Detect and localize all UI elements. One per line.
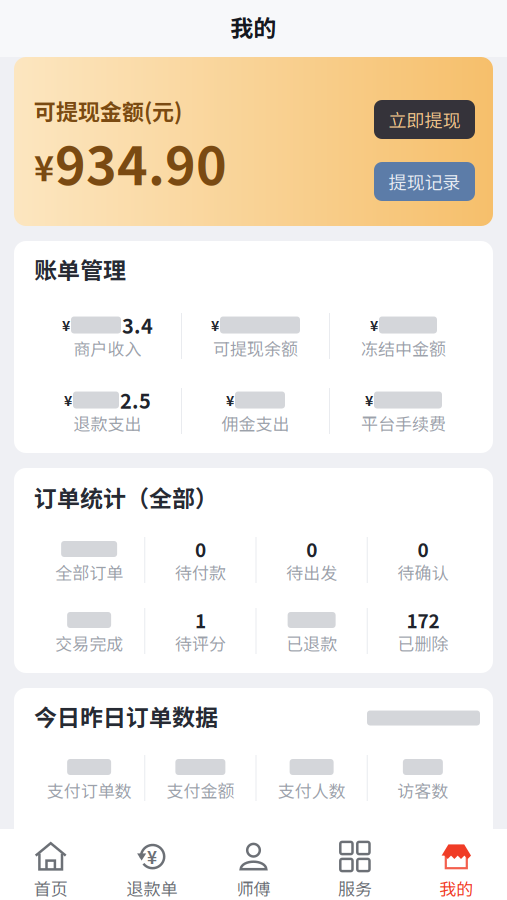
- staticText: 今日昨日订单数据: [34, 699, 218, 733]
- staticText: 172: [406, 606, 439, 634]
- staticText: ¥: [34, 142, 54, 191]
- staticText: 已退款: [286, 631, 337, 655]
- staticText: 佣金支出: [221, 411, 289, 435]
- staticText: 待付款: [175, 560, 226, 584]
- staticText: 支付订单数: [47, 778, 132, 802]
- staticText: 可提现余额: [213, 336, 298, 360]
- staticText: 支付金额: [166, 778, 234, 802]
- staticText: 待出发: [286, 560, 337, 584]
- staticText: 已删除: [397, 631, 448, 655]
- staticText: 0: [417, 535, 428, 563]
- staticText: 交易完成: [55, 631, 123, 655]
- staticText: ¥: [226, 390, 234, 410]
- staticText: ¥: [62, 315, 70, 335]
- staticText: 访客数: [397, 778, 448, 802]
- staticText: 待评分: [175, 631, 226, 655]
- staticText: 账单管理: [34, 252, 126, 286]
- staticText: 提现记录: [388, 168, 460, 195]
- staticText: 我的: [230, 10, 276, 43]
- staticText: ¥: [64, 390, 72, 410]
- staticText: 0: [306, 535, 317, 563]
- staticText: 2.5: [120, 385, 151, 414]
- staticText: 立即提现: [388, 106, 460, 133]
- staticText: ¥: [365, 390, 373, 410]
- staticText: 全部订单: [55, 560, 123, 584]
- staticText: 0: [195, 535, 206, 563]
- staticText: 首页: [34, 876, 68, 900]
- staticText: 订单统计（全部）: [34, 480, 218, 514]
- button[interactable]: ¥: [101, 829, 203, 900]
- staticText: 商户收入: [73, 336, 141, 360]
- staticText: 支付人数: [278, 778, 346, 802]
- button[interactable]: 首页: [0, 829, 101, 900]
- button[interactable]: 立即提现: [374, 100, 475, 139]
- staticText: 3.4: [122, 310, 153, 339]
- staticText: 我的: [439, 876, 473, 900]
- staticText: 待确认: [397, 560, 448, 584]
- button[interactable]: 师傅: [203, 829, 304, 900]
- staticText: 冻结中金额: [361, 336, 446, 360]
- staticText: ¥: [211, 315, 219, 335]
- staticText: 师傅: [236, 876, 270, 900]
- button[interactable]: 我的: [406, 829, 507, 900]
- staticText: 服务: [338, 876, 372, 900]
- staticText: ¥: [147, 844, 157, 869]
- staticText: 退款单: [127, 876, 178, 900]
- staticText: 退款支出: [73, 411, 141, 435]
- staticText: 可提现金额(元): [34, 95, 182, 126]
- button[interactable]: 提现记录: [374, 162, 475, 201]
- staticText: ¥: [370, 315, 378, 335]
- button[interactable]: 服务: [304, 829, 406, 900]
- staticText: 平台手续费: [361, 411, 446, 435]
- staticText: 934.90: [55, 125, 227, 200]
- staticText: 1: [195, 606, 206, 634]
